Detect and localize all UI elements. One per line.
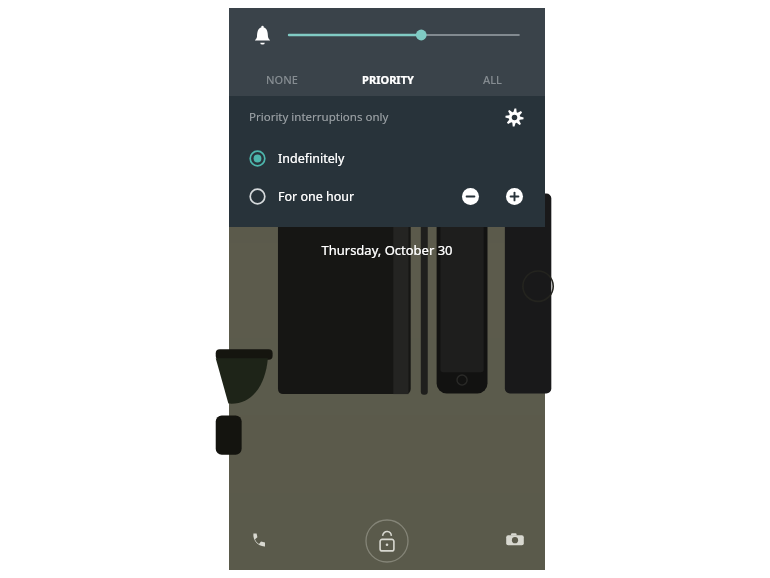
button[interactable]: Indefinitely [229,142,545,174]
staticText: PRIORITY [362,72,414,87]
button[interactable]: Ringer volume [245,18,279,52]
button[interactable]: Increase [501,183,527,209]
button[interactable]: ALL [440,62,545,96]
button[interactable]: Decrease [457,183,483,209]
staticText: For one hour [278,188,457,205]
button[interactable]: Volume slider [289,21,519,49]
staticText: NONE [266,72,298,87]
button[interactable]: NONE [229,62,335,96]
button[interactable]: For one hour [229,179,545,213]
staticText: Priority interruptions only [249,109,497,125]
staticText: Thursday, October 30 [321,241,453,259]
staticText: ALL [483,72,502,87]
button[interactable]: Unlock [364,518,410,564]
button[interactable]: Settings [497,100,531,134]
button[interactable]: Phone [237,518,281,562]
button[interactable]: PRIORITY [335,62,440,96]
staticText: Indefinitely [278,150,345,167]
button[interactable]: Camera [493,518,537,562]
